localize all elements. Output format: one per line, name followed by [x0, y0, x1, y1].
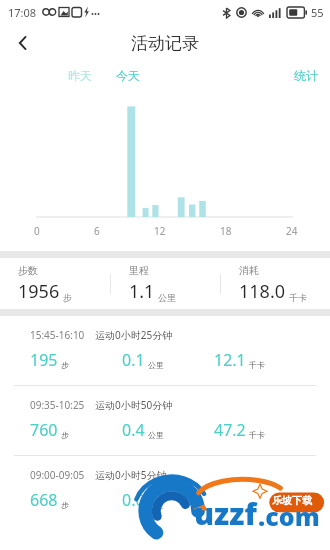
staticText: 09:00-09:05 [30, 468, 85, 482]
staticText: 195 [30, 349, 58, 371]
button[interactable]: 09:35-10:25 [0, 386, 330, 455]
staticText: 1956 [18, 279, 60, 304]
staticText: 18 [220, 224, 232, 238]
staticText: 消耗 [239, 264, 259, 277]
staticText: 步 [63, 292, 72, 303]
staticText: 0 [34, 224, 40, 238]
staticText: .com [258, 499, 320, 533]
staticText: 千卡 [249, 360, 265, 370]
staticText: 24 [286, 224, 298, 238]
staticText: 12 [154, 224, 166, 238]
staticText: 668 [30, 489, 58, 511]
staticText: 1.1 [129, 279, 155, 304]
staticText: 活动记录 [131, 33, 199, 54]
staticText: 0.4 [122, 419, 145, 441]
staticText: 千卡 [249, 430, 265, 440]
staticText: 0.1 [122, 349, 145, 371]
staticText: 公里 [158, 292, 176, 303]
button[interactable]: 今天 [110, 65, 146, 86]
staticText: 里程 [129, 264, 149, 277]
staticText: 17:08 [8, 5, 37, 20]
staticText: 步 [61, 500, 69, 510]
button[interactable]: 昨天 [62, 65, 98, 86]
staticText: 760 [30, 419, 58, 441]
staticText: 乐坡下载 [272, 494, 312, 507]
button[interactable]: 返回 [4, 24, 42, 62]
staticText: 09:35-10:25 [30, 398, 85, 412]
staticText: 0.0 [122, 489, 145, 511]
staticText: 步数 [18, 264, 38, 277]
staticText: 47.2 [214, 419, 246, 441]
staticText: 公里 [148, 430, 164, 440]
staticText: 运动0小时5分钟 [95, 468, 167, 482]
button[interactable]: 步数 [0, 260, 110, 308]
staticText: 步 [61, 430, 69, 440]
staticText: uzzf [194, 493, 257, 534]
staticText: 6 [94, 224, 100, 238]
staticText: 118.0 [239, 279, 286, 304]
staticText: 公里 [148, 500, 164, 510]
button[interactable]: 09:00-09:05 [0, 456, 330, 525]
staticText: 统计 [294, 68, 318, 83]
staticText: 今天 [116, 68, 140, 83]
staticText: 55 [311, 5, 324, 20]
staticText: 公里 [148, 360, 164, 370]
button[interactable]: 里程 [111, 260, 220, 308]
staticText: 昨天 [68, 68, 92, 83]
staticText: 运动0小时25分钟 [95, 328, 173, 342]
staticText: 12.1 [214, 349, 246, 371]
button[interactable]: 消耗 [221, 260, 330, 308]
button[interactable]: 统计 [288, 65, 324, 86]
staticText: 15:45-16:10 [30, 328, 85, 342]
staticText: 千卡 [289, 292, 307, 303]
staticText: 运动0小时50分钟 [95, 398, 173, 412]
button[interactable]: 15:45-16:10 [0, 316, 330, 385]
staticText: 步 [61, 360, 69, 370]
